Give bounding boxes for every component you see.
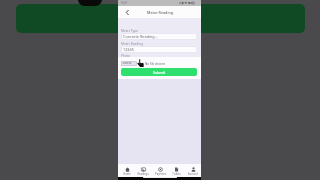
staticText: Payment — [155, 172, 166, 176]
button[interactable]: Account — [185, 164, 201, 177]
staticText: Readings — [137, 172, 149, 176]
staticText: Meter Reading — [121, 42, 144, 46]
staticText: Submit — [153, 70, 166, 75]
staticText: No file chosen — [145, 62, 166, 66]
staticText: Photo — [121, 54, 130, 58]
button[interactable]: Home — [119, 164, 135, 177]
staticText: Tickets — [172, 172, 181, 176]
staticText: Concrete Reading... — [123, 34, 158, 39]
button[interactable]: 12345 — [121, 46, 197, 53]
staticText: Account — [188, 172, 198, 176]
button[interactable]: Choose File — [121, 61, 137, 66]
button[interactable]: Tickets — [168, 164, 184, 177]
button[interactable]: Payment — [152, 164, 168, 177]
button[interactable]: Submit — [121, 68, 197, 76]
button[interactable]: Back — [123, 8, 131, 16]
button[interactable]: Readings — [135, 164, 151, 177]
staticText: Home — [123, 172, 131, 176]
staticText: Choose File — [121, 61, 137, 66]
button[interactable]: Concrete Reading... — [121, 33, 197, 40]
staticText: Meter Type — [121, 29, 138, 33]
staticText: Meter Reading — [147, 10, 173, 15]
staticText: 12345 — [123, 47, 134, 52]
staticText: 9:41 — [121, 1, 128, 5]
